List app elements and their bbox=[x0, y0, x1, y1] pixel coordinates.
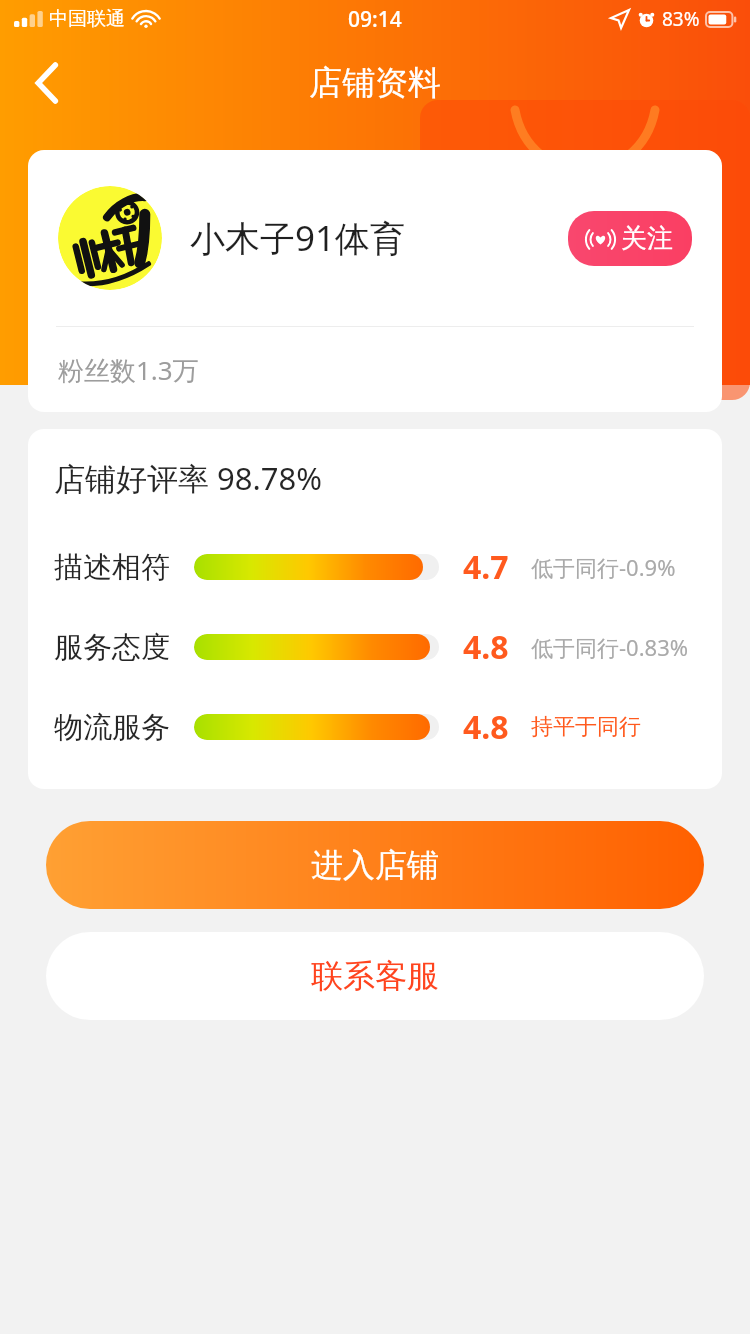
staticText: 进入店铺 bbox=[311, 845, 439, 885]
button[interactable]: Back bbox=[18, 54, 76, 112]
staticText: 店铺好评率 98.78% bbox=[54, 457, 323, 499]
staticText: 服务态度 bbox=[54, 629, 170, 666]
staticText: 联系客服 bbox=[311, 956, 439, 996]
staticText: 4.7 bbox=[463, 545, 509, 589]
button[interactable]: 联系客服 bbox=[46, 932, 704, 1020]
button[interactable]: 关注 bbox=[568, 211, 692, 266]
staticText: 物流服务 bbox=[54, 709, 170, 746]
staticText: 关注 bbox=[621, 222, 673, 255]
staticText: 83% bbox=[662, 6, 700, 32]
button[interactable]: 进入店铺 bbox=[46, 821, 704, 909]
staticText: 粉丝数1.3万 bbox=[58, 352, 199, 388]
staticText: 09:14 bbox=[348, 5, 402, 34]
staticText: 持平于同行 bbox=[531, 713, 641, 741]
button[interactable]: 描述相符 bbox=[28, 527, 722, 607]
button[interactable]: 粉丝数1.3万 bbox=[28, 327, 722, 412]
staticText: 低于同行-0.9% bbox=[531, 552, 676, 582]
button[interactable]: 服务态度 bbox=[28, 607, 722, 687]
staticText: 中国联通 bbox=[49, 7, 125, 31]
staticText: 4.8 bbox=[463, 625, 509, 669]
button[interactable]: 物流服务 bbox=[28, 687, 722, 767]
staticText: 低于同行-0.83% bbox=[531, 632, 689, 662]
button[interactable]: 小木子91体育 bbox=[28, 150, 722, 326]
staticText: 店铺资料 bbox=[309, 62, 441, 104]
staticText: 4.8 bbox=[463, 705, 509, 749]
staticText: 小木子91体育 bbox=[190, 214, 568, 262]
staticText: 描述相符 bbox=[54, 549, 170, 586]
